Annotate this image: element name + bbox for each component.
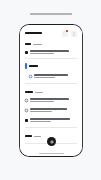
- button[interactable]: More options: [70, 30, 77, 37]
- button[interactable]: [25, 106, 77, 114]
- button[interactable]: [25, 63, 77, 69]
- button[interactable]: Add reminder: [47, 137, 56, 146]
- button[interactable]: [29, 72, 77, 80]
- button[interactable]: [25, 116, 77, 124]
- button[interactable]: [25, 96, 77, 104]
- button[interactable]: Notifications: [61, 30, 68, 37]
- button[interactable]: [25, 48, 77, 56]
